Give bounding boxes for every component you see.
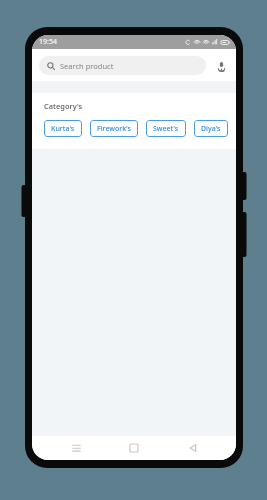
staticText: Category's (44, 101, 83, 111)
button[interactable]: Home (119, 437, 149, 459)
button[interactable]: Diya's (194, 120, 228, 137)
button[interactable]: Firework's (90, 120, 138, 137)
staticText: Kurta's (51, 124, 75, 134)
staticText: Diya's (201, 124, 221, 134)
button[interactable]: Kurta's (44, 120, 82, 137)
button[interactable]: Sweet's (146, 120, 186, 137)
button[interactable]: Voice search (213, 58, 229, 74)
staticText: Sweet's (153, 124, 179, 134)
staticText: 19:54 (39, 37, 57, 47)
button[interactable]: Search product (39, 56, 206, 75)
button[interactable]: Back (178, 437, 208, 459)
staticText: Search product (60, 61, 114, 71)
staticText: Firework's (97, 124, 131, 134)
button[interactable]: Recent apps (61, 437, 91, 459)
